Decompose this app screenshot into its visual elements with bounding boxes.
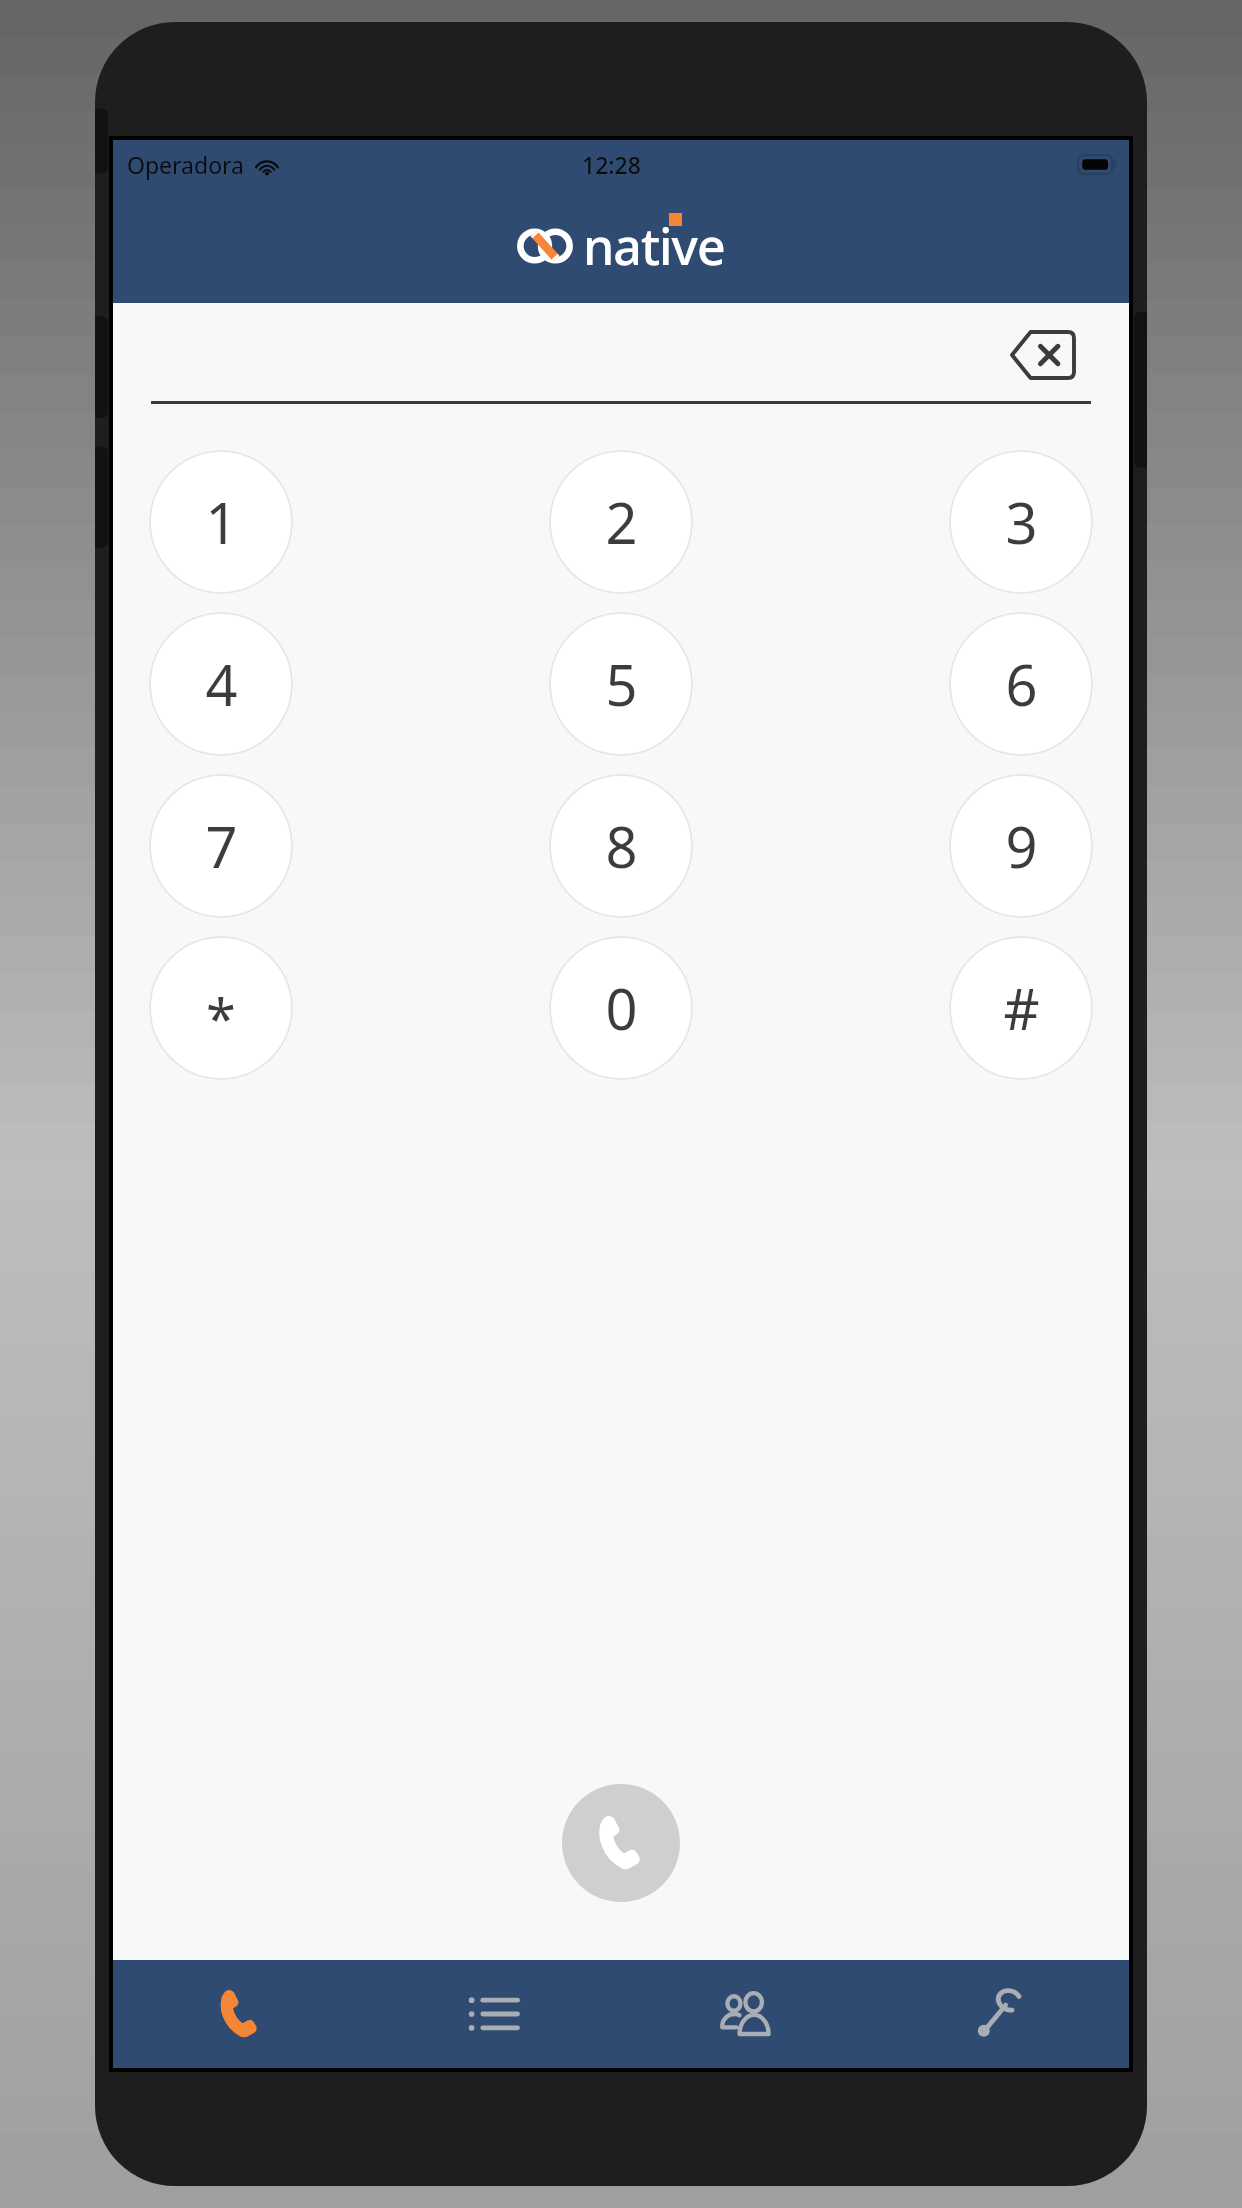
staticText: 3 (1005, 484, 1038, 560)
button[interactable]: 7 (149, 774, 293, 918)
staticText: # (1003, 970, 1040, 1046)
staticText: * (206, 981, 236, 1055)
button[interactable]: 6 (949, 612, 1093, 756)
staticText: 0 (605, 970, 638, 1046)
staticText: 6 (1005, 646, 1038, 722)
staticText: 8 (605, 808, 638, 884)
button[interactable]: Settings (875, 1960, 1129, 2068)
button[interactable]: 5 (549, 612, 693, 756)
staticText: Operadora (127, 149, 245, 180)
staticText: 9 (1005, 808, 1038, 884)
button[interactable]: 8 (549, 774, 693, 918)
staticText: 7 (205, 808, 238, 884)
button[interactable]: 0 (549, 936, 693, 1080)
staticText: 12:28 (582, 149, 641, 180)
button[interactable]: 4 (149, 612, 293, 756)
staticText: 1 (205, 484, 238, 560)
button[interactable]: 9 (949, 774, 1093, 918)
button[interactable]: 3 (949, 450, 1093, 594)
button[interactable]: Dialer (113, 1960, 367, 2068)
button[interactable]: Call (562, 1784, 680, 1902)
button[interactable]: * (149, 936, 293, 1080)
button[interactable]: # (949, 936, 1093, 1080)
button[interactable]: Contacts (621, 1960, 875, 2068)
staticText: 2 (605, 484, 638, 560)
button[interactable]: Backspace (1005, 327, 1081, 383)
button[interactable]: Call history (367, 1960, 621, 2068)
staticText: 4 (205, 646, 238, 722)
staticText: 5 (605, 646, 638, 722)
button[interactable]: 2 (549, 450, 693, 594)
staticText: native (583, 212, 725, 280)
button[interactable]: 1 (149, 450, 293, 594)
